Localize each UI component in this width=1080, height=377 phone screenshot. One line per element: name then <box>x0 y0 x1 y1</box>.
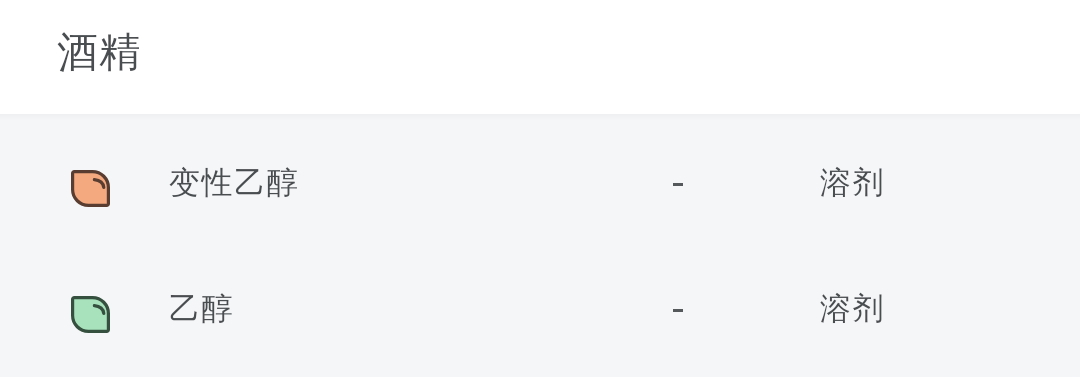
other: Plant based ingredient <box>71 170 110 207</box>
staticText: 乙醇 <box>169 289 235 328</box>
other: Plant based ingredient <box>71 296 110 333</box>
button[interactable]: Plant based ingredient <box>0 114 1080 240</box>
staticText: 变性乙醇 <box>169 163 300 202</box>
staticText: 酒精 <box>57 27 142 79</box>
staticText: 溶剂 <box>820 289 886 328</box>
button[interactable]: Plant based ingredient <box>0 240 1080 366</box>
staticText: 溶剂 <box>820 163 886 202</box>
